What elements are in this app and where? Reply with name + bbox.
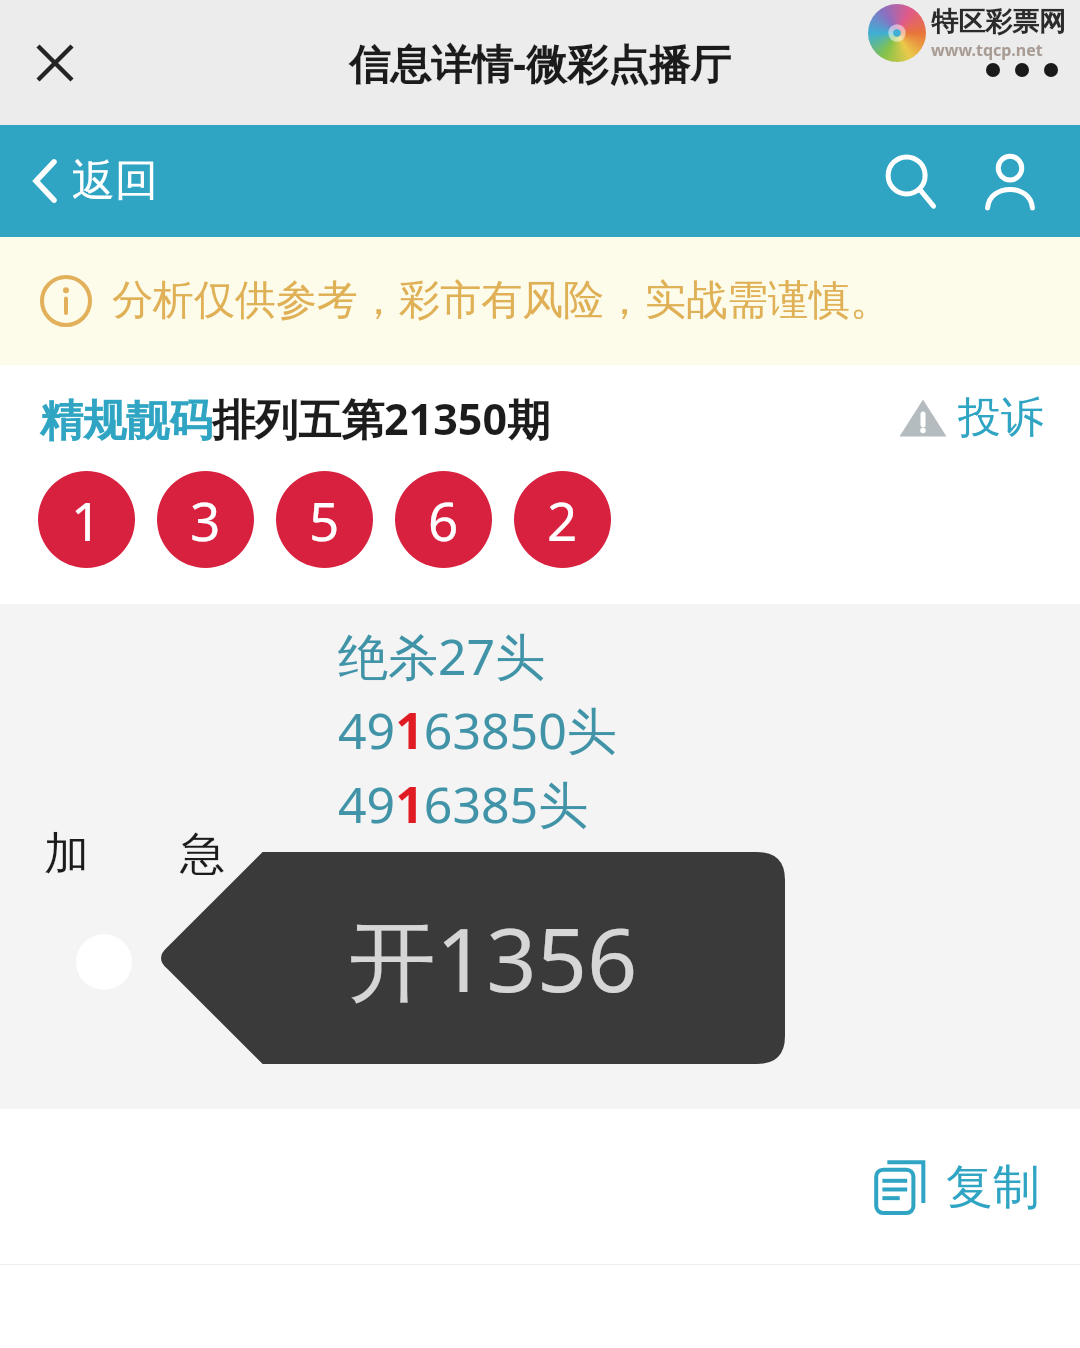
staticText: 加 [44, 826, 89, 883]
button[interactable]: Profile [966, 137, 1054, 225]
staticText: 1 [71, 484, 102, 556]
button[interactable]: 复制 [870, 1156, 1040, 1218]
staticText: 开1356 [348, 898, 638, 1018]
button[interactable]: More options [986, 63, 1058, 77]
button[interactable]: 5 [276, 471, 373, 568]
button[interactable]: 返回 [30, 154, 174, 208]
staticText: 49163850头 [338, 696, 617, 764]
button[interactable]: 开1356 [155, 852, 785, 1064]
button[interactable]: Close [20, 28, 90, 98]
staticText: www.tqcp.net [931, 39, 1043, 61]
staticText: 信息详情-微彩点播厅 [349, 35, 732, 91]
staticText: 绝杀27头 [338, 622, 546, 690]
button[interactable]: 1 [38, 471, 135, 568]
staticText: 急 [180, 826, 225, 883]
staticText: 特区彩票网 [931, 5, 1066, 39]
button[interactable]: 6 [395, 471, 492, 568]
staticText: 3 [190, 484, 221, 556]
staticText: 491638头 [338, 844, 560, 912]
button[interactable]: Search [866, 137, 954, 225]
staticText: 返回 [72, 154, 158, 208]
staticText: 复制 [946, 1158, 1040, 1217]
staticText: 精规靓码排列五第21350期 [40, 389, 550, 448]
staticText: 6 [428, 484, 459, 556]
staticText: 投诉 [958, 391, 1044, 445]
button[interactable]: 投诉 [898, 391, 1044, 445]
button[interactable]: 3 [157, 471, 254, 568]
staticText: 2 [547, 484, 578, 556]
button[interactable]: 2 [514, 471, 611, 568]
staticText: 分析仅供参考，彩市有风险，实战需谨慎。 [112, 275, 891, 327]
staticText: 5 [309, 484, 340, 556]
staticText: 4916385头 [338, 770, 589, 838]
